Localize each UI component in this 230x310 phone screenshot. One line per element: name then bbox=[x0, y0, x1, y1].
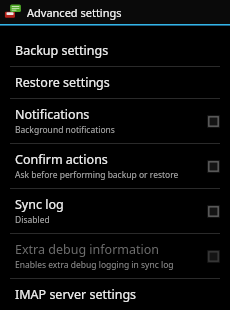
staticText: Ask before performing backup or restore bbox=[15, 169, 179, 181]
button[interactable]: Notifications bbox=[0, 99, 230, 143]
staticText: Sync log bbox=[15, 196, 64, 213]
button[interactable]: Toggle checkbox bbox=[207, 205, 220, 218]
staticText: Confirm actions bbox=[15, 151, 108, 168]
staticText: Extra debug information bbox=[15, 241, 160, 258]
staticText: Backup settings bbox=[15, 42, 109, 59]
staticText: IMAP server settings bbox=[15, 286, 137, 303]
button[interactable]: App icon bbox=[0, 0, 230, 24]
button[interactable]: Backup settings bbox=[0, 35, 230, 66]
staticText: Disabled bbox=[15, 214, 50, 226]
button[interactable]: Confirm actions bbox=[0, 144, 230, 188]
button[interactable]: Toggle checkbox bbox=[207, 250, 220, 263]
button[interactable]: Extra debug information bbox=[0, 234, 230, 278]
button[interactable]: Toggle checkbox bbox=[207, 160, 220, 173]
other: App icon bbox=[4, 3, 22, 21]
button[interactable]: IMAP server settings bbox=[0, 279, 230, 310]
staticText: Enables extra debug logging in sync log bbox=[15, 259, 174, 271]
staticText: Background notifications bbox=[15, 124, 115, 136]
button[interactable]: Toggle checkbox bbox=[207, 115, 220, 128]
button[interactable]: Sync log bbox=[0, 189, 230, 233]
staticText: Restore settings bbox=[15, 74, 110, 91]
button[interactable]: Restore settings bbox=[0, 67, 230, 98]
staticText: Advanced settings bbox=[27, 5, 122, 20]
staticText: Notifications bbox=[15, 106, 90, 123]
